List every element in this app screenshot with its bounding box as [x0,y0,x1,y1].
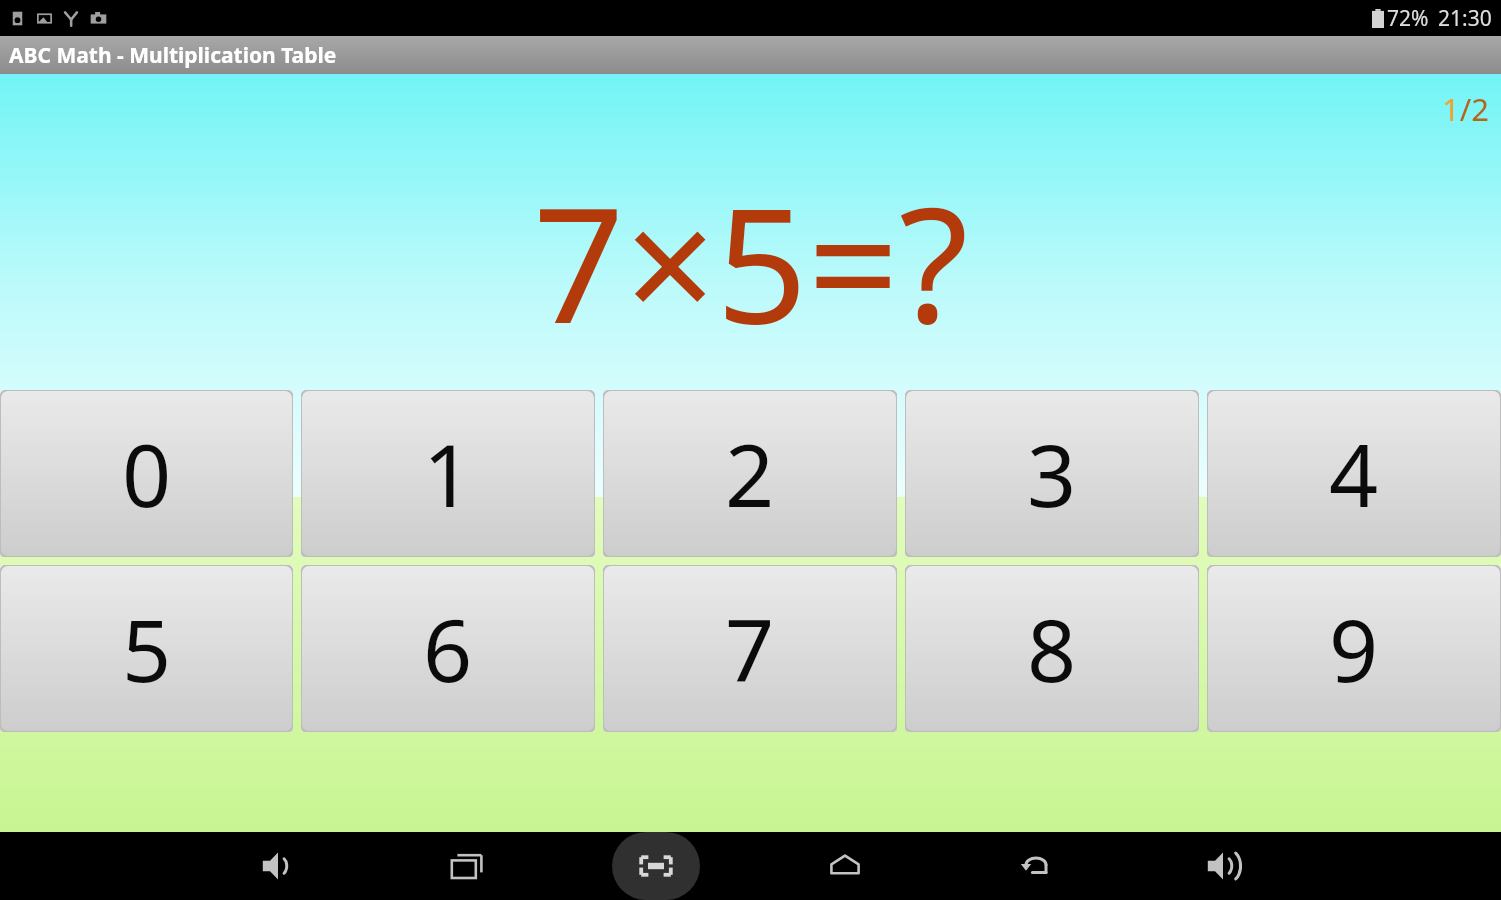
staticText: 9 [1329,590,1379,707]
staticText: 7 [725,590,775,707]
button[interactable]: 7 [603,565,897,732]
button[interactable]: 6 [301,565,595,732]
staticText: 4 [1329,415,1379,532]
button[interactable]: Recent apps [421,832,513,900]
staticText: 1/2 [1442,88,1489,130]
button[interactable]: Back [988,832,1080,900]
staticText: 2 [725,415,775,532]
button[interactable]: 9 [1207,565,1501,732]
button[interactable]: 1 [301,390,595,557]
button[interactable]: 0 [0,390,293,557]
button[interactable]: 3 [905,390,1199,557]
staticText: 5 [122,590,172,707]
staticText: 6 [423,590,473,707]
button[interactable]: 4 [1207,390,1501,557]
staticText: 3 [1027,415,1077,532]
button[interactable]: Volume down [232,832,324,900]
button[interactable]: 5 [0,565,293,732]
button[interactable]: 8 [905,565,1199,732]
staticText: 21:30 [1438,4,1492,33]
button[interactable]: Home [799,832,891,900]
staticText: 8 [1027,590,1077,707]
button[interactable]: Volume up [1177,832,1269,900]
button[interactable]: Resize screen [610,832,702,900]
staticText: 72% [1387,4,1429,33]
staticText: ABC Math - Multiplication Table [9,41,337,70]
staticText: 7×5=? [533,152,969,370]
staticText: 0 [122,415,172,532]
button[interactable]: 2 [603,390,897,557]
staticText: 1 [423,415,473,532]
